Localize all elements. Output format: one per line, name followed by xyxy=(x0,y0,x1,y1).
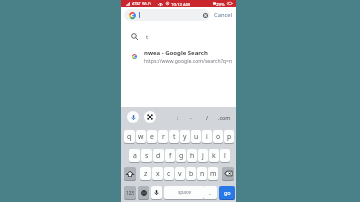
button[interactable]: 123 xyxy=(124,186,136,199)
button[interactable]: m xyxy=(208,167,218,180)
staticText: i xyxy=(206,132,208,141)
button[interactable]: y xyxy=(180,130,190,143)
button[interactable]: Voice search xyxy=(127,111,139,123)
staticText: x xyxy=(156,169,160,178)
staticText: q xyxy=(127,132,132,141)
button[interactable]: i xyxy=(202,130,212,143)
button[interactable]: c xyxy=(164,167,174,180)
button[interactable]: o xyxy=(213,130,223,143)
staticText: 29% xyxy=(216,1,225,7)
staticText: e xyxy=(150,132,154,141)
staticText: AT&T Wi-Fi xyxy=(132,1,151,6)
staticText: h xyxy=(190,151,195,160)
button[interactable]: z xyxy=(140,167,151,180)
button[interactable]: s xyxy=(141,149,152,162)
staticText: go xyxy=(224,189,231,196)
staticText: - xyxy=(190,114,192,121)
staticText: s xyxy=(145,151,149,160)
button[interactable]: Dictate xyxy=(151,186,162,199)
staticText: f xyxy=(169,151,172,160)
button[interactable]: j xyxy=(198,149,208,162)
button[interactable]: n xyxy=(197,167,207,180)
staticText: l xyxy=(224,151,226,160)
staticText: d xyxy=(156,151,161,160)
staticText: t xyxy=(146,33,149,41)
button[interactable]: b xyxy=(186,167,196,180)
staticText: . xyxy=(209,188,211,197)
staticText: p xyxy=(227,132,232,141)
staticText: y xyxy=(183,132,187,141)
staticText: nwea - Google Search xyxy=(144,49,208,57)
button[interactable]: . xyxy=(203,186,217,199)
staticText: u xyxy=(194,132,199,141)
button[interactable]: l xyxy=(220,149,230,162)
button[interactable]: Cancel xyxy=(214,11,233,19)
staticText: .com xyxy=(218,114,231,121)
staticText: v xyxy=(178,169,182,178)
button[interactable]: go xyxy=(219,186,235,199)
button[interactable]: e xyxy=(147,130,157,143)
button[interactable]: space xyxy=(164,186,204,199)
button[interactable]: d xyxy=(153,149,164,162)
button[interactable]: f xyxy=(165,149,175,162)
button[interactable]: p xyxy=(224,130,234,143)
button[interactable]: h xyxy=(187,149,197,162)
staticText: / xyxy=(206,114,209,121)
button[interactable]: Backspace xyxy=(222,167,234,180)
button[interactable]: Handwriting xyxy=(144,111,156,123)
button[interactable]: w xyxy=(136,130,146,143)
button[interactable]: q xyxy=(124,130,135,143)
staticText: w xyxy=(138,132,144,141)
staticText: 123 xyxy=(126,190,134,196)
button[interactable]: k xyxy=(209,149,219,162)
button[interactable]: a xyxy=(129,149,140,162)
button[interactable]: r xyxy=(158,130,168,143)
button[interactable]: Shift xyxy=(124,167,136,180)
staticText: space xyxy=(178,189,191,196)
staticText: c xyxy=(167,169,171,178)
button[interactable]: v xyxy=(175,167,185,180)
button[interactable]: Clear xyxy=(203,13,208,18)
staticText: : xyxy=(177,114,179,121)
staticText: https://www.google.com/search?q=n xyxy=(144,58,235,65)
staticText: r xyxy=(162,132,165,141)
button[interactable]: g xyxy=(176,149,186,162)
staticText: z xyxy=(144,169,148,178)
button[interactable]: x xyxy=(152,167,163,180)
button[interactable]: nwea - Google Search xyxy=(121,45,236,66)
staticText: b xyxy=(189,169,194,178)
staticText: o xyxy=(216,132,221,141)
button[interactable]: t xyxy=(121,28,236,45)
staticText: m xyxy=(210,169,217,178)
staticText: k xyxy=(212,151,216,160)
button[interactable]: u xyxy=(191,130,201,143)
staticText: Cancel xyxy=(214,11,233,19)
button[interactable]: t xyxy=(169,130,179,143)
staticText: 10:13 AM xyxy=(171,1,190,7)
staticText: g xyxy=(179,151,184,160)
staticText: a xyxy=(133,151,137,160)
button[interactable]: Next keyboard xyxy=(138,186,149,199)
staticText: t xyxy=(173,132,176,141)
button[interactable]: Clear xyxy=(124,9,210,21)
staticText: n xyxy=(200,169,205,178)
staticText: j xyxy=(202,151,204,160)
